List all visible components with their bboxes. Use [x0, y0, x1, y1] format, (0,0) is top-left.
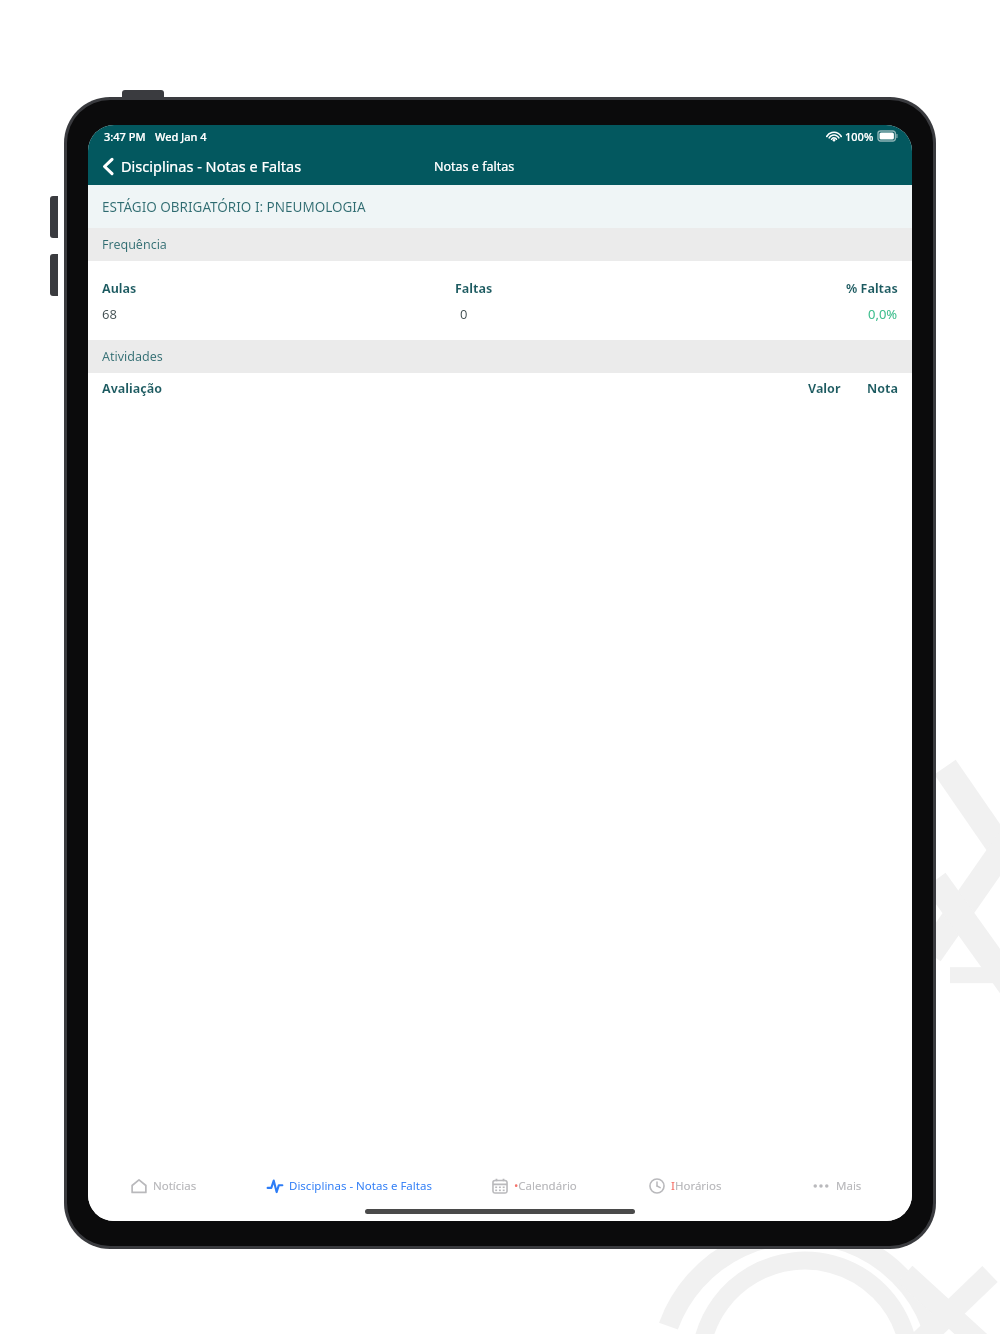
button[interactable]: Notícias [88, 1165, 240, 1207]
staticText: Disciplinas - Notas e Faltas [289, 1178, 432, 1194]
button[interactable]: ESTÁGIO OBRIGATÓRIO I: PNEUMOLOGIA [88, 185, 912, 228]
staticText: IHorários [671, 1178, 722, 1194]
staticText: Faltas [455, 280, 493, 297]
staticText: 0,0% [868, 305, 898, 323]
staticText: 3:47 PM [104, 129, 146, 144]
staticText: Nota [867, 380, 898, 397]
staticText: ESTÁGIO OBRIGATÓRIO I: PNEUMOLOGIA [102, 198, 366, 216]
staticText: Mais [836, 1178, 862, 1194]
staticText: Wed Jan 4 [155, 129, 207, 144]
staticText: Aulas [102, 280, 137, 297]
button[interactable]: Calendário [459, 1165, 610, 1207]
button[interactable]: Mais [761, 1165, 912, 1207]
staticText: Valor [808, 380, 841, 397]
staticText: Notícias [153, 1178, 197, 1194]
staticText: Atividades [102, 348, 163, 365]
staticText: Disciplinas - Notas e Faltas [121, 156, 302, 176]
other: Back [103, 158, 114, 175]
staticText: 0 [460, 305, 468, 323]
button[interactable]: Back [101, 152, 304, 180]
staticText: 68 [102, 305, 117, 323]
button[interactable]: Disciplinas [240, 1165, 459, 1207]
staticText: •Calendário [514, 1178, 577, 1194]
staticText: Frequência [102, 236, 167, 253]
button[interactable]: 68 [88, 300, 912, 328]
staticText: Avaliação [102, 380, 162, 397]
button[interactable]: Horários [610, 1165, 761, 1207]
staticText: 100% [845, 129, 874, 144]
staticText: % Faltas [846, 280, 898, 297]
staticText: Notas e faltas [434, 158, 515, 175]
